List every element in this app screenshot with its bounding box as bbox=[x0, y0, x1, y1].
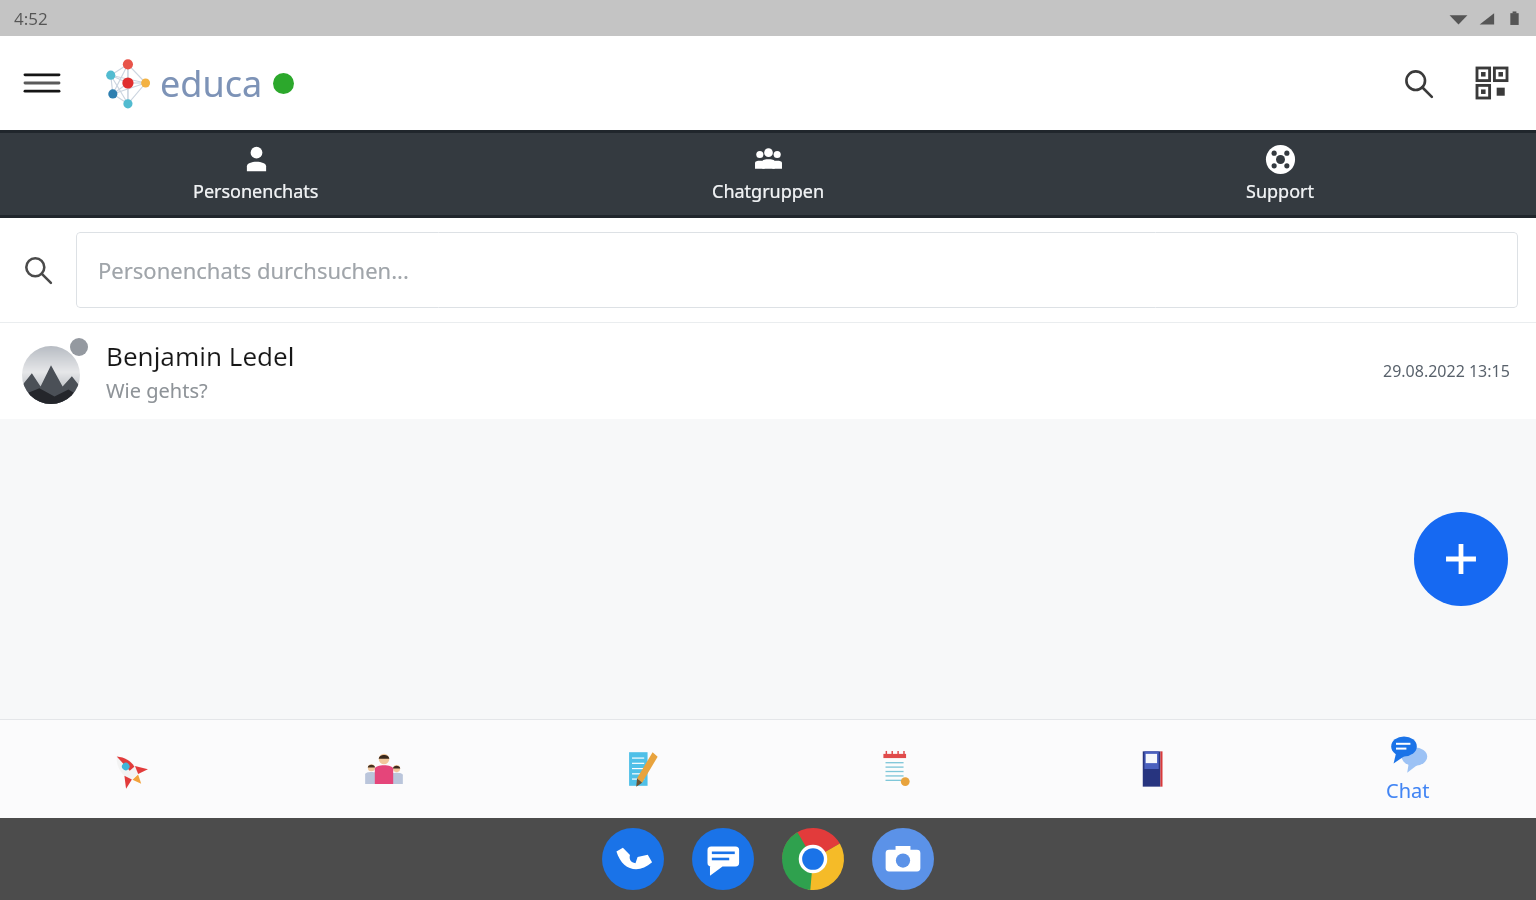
button[interactable]: Search bbox=[1388, 53, 1448, 113]
button[interactable]: Search chats bbox=[12, 244, 64, 296]
button[interactable]: Phone bbox=[602, 828, 664, 890]
button[interactable]: Support bbox=[1024, 133, 1536, 215]
staticText: Wie gehts? bbox=[106, 377, 208, 404]
staticText: Personenchats durchsuchen... bbox=[98, 255, 409, 285]
button[interactable]: Chatgruppen bbox=[512, 133, 1024, 215]
button[interactable]: Messages bbox=[692, 828, 754, 890]
button[interactable]: Scan code bbox=[1462, 53, 1522, 113]
staticText: Support bbox=[1246, 179, 1314, 204]
button[interactable]: Planner bbox=[768, 720, 1024, 818]
staticText: Chat bbox=[1386, 777, 1430, 804]
button[interactable]: Personenchats durchsuchen... bbox=[76, 232, 1518, 308]
button[interactable]: New chat bbox=[1414, 512, 1508, 606]
staticText: Personenchats bbox=[193, 179, 319, 204]
button[interactable]: Benjamin Ledel bbox=[0, 323, 1536, 419]
button[interactable]: Chrome bbox=[782, 828, 844, 890]
button[interactable]: Camera bbox=[872, 828, 934, 890]
button[interactable]: Groups bbox=[256, 720, 512, 818]
staticText: Chatgruppen bbox=[712, 179, 825, 204]
button[interactable]: Open menu bbox=[10, 51, 74, 115]
button[interactable]: Notes bbox=[512, 720, 768, 818]
button[interactable]: Journal bbox=[1024, 720, 1280, 818]
staticText: educa bbox=[160, 59, 263, 108]
button[interactable]: Chat bbox=[1280, 720, 1536, 818]
staticText: 4:52 bbox=[14, 7, 48, 30]
button[interactable]: Start bbox=[0, 720, 256, 818]
staticText: 29.08.2022 13:15 bbox=[1383, 360, 1510, 382]
staticText: Benjamin Ledel bbox=[106, 338, 295, 373]
button[interactable]: Personenchats bbox=[0, 133, 512, 215]
